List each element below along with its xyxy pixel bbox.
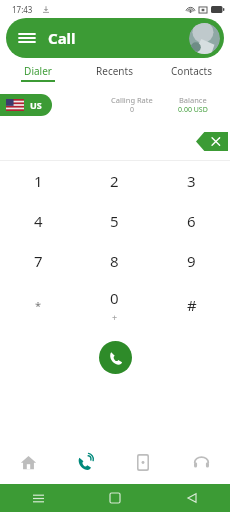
staticText: Contacts — [171, 64, 212, 78]
staticText: Recents — [96, 64, 133, 78]
staticText: 4 — [34, 211, 43, 231]
button[interactable]: Profile — [187, 21, 221, 55]
button[interactable]: 7 — [0, 241, 76, 281]
staticText: 5 — [110, 211, 119, 231]
button[interactable]: 8 — [76, 241, 153, 281]
button[interactable]: Call — [99, 341, 132, 374]
staticText: 1 — [34, 171, 43, 191]
button[interactable]: # — [153, 281, 230, 329]
staticText: 0 — [110, 288, 119, 308]
button[interactable]: Menu — [12, 23, 42, 53]
button[interactable]: 0 — [76, 281, 153, 329]
staticText: Balance — [179, 95, 207, 105]
button[interactable]: 9 — [153, 241, 230, 281]
button[interactable]: Home — [103, 486, 127, 510]
button[interactable]: Delete — [196, 132, 228, 151]
button[interactable]: Recents — [76, 58, 153, 88]
button[interactable]: Dialer — [0, 58, 76, 88]
button[interactable]: * — [0, 281, 76, 329]
staticText: 7 — [34, 251, 43, 271]
staticText: # — [187, 295, 197, 315]
staticText: 9 — [187, 251, 196, 271]
button[interactable]: 6 — [153, 201, 230, 241]
staticText: 2 — [110, 171, 119, 191]
button[interactable]: 4 — [0, 201, 76, 241]
button[interactable]: Recents — [26, 486, 50, 510]
button[interactable]: 3 — [153, 161, 230, 201]
staticText: Call — [48, 28, 76, 48]
button[interactable]: 1 — [0, 161, 76, 201]
button[interactable]: Home — [0, 440, 57, 484]
button[interactable]: Support — [172, 440, 230, 484]
button[interactable]: 2 — [76, 161, 153, 201]
button[interactable]: Contacts — [153, 58, 230, 88]
staticText: * — [35, 298, 42, 313]
button[interactable]: 5 — [76, 201, 153, 241]
staticText: Calling Rate — [111, 95, 153, 105]
button[interactable]: Dialer — [57, 440, 114, 484]
button[interactable]: Back — [180, 486, 204, 510]
staticText: Dialer — [24, 64, 52, 78]
staticText: + — [112, 311, 118, 323]
button[interactable]: Device — [114, 440, 172, 484]
button[interactable]: US — [0, 94, 52, 116]
staticText: 17:43 — [12, 4, 33, 15]
staticText: 0 — [130, 105, 135, 115]
staticText: 6 — [187, 211, 196, 231]
staticText: 0.00 USD — [178, 105, 208, 115]
staticText: 3 — [187, 171, 196, 191]
staticText: US — [30, 99, 42, 111]
staticText: 8 — [110, 251, 119, 271]
